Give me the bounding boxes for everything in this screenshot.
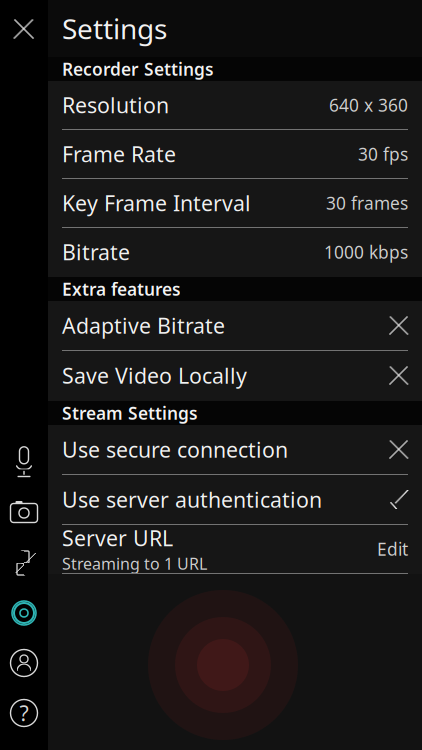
button[interactable]: Use server authentication — [48, 475, 422, 525]
staticText: Streaming to 1 URL — [62, 553, 207, 574]
button[interactable]: Microphone — [0, 436, 48, 488]
staticText: Use secure connection — [62, 435, 288, 464]
button[interactable]: Use secure connection — [48, 425, 422, 475]
button[interactable]: Adaptive Bitrate — [48, 301, 422, 351]
button[interactable]: Switch camera — [0, 488, 48, 538]
staticText: Recorder Settings — [62, 57, 214, 80]
staticText: Bitrate — [62, 238, 130, 266]
staticText: Save Video Locally — [62, 361, 247, 390]
button[interactable]: Frame Rate — [48, 130, 422, 179]
staticText: Key Frame Interval — [62, 189, 251, 217]
staticText: Server URL — [62, 524, 173, 552]
button[interactable]: Settings — [0, 588, 48, 638]
button[interactable]: Help — [0, 688, 48, 738]
staticText: Edit — [377, 537, 408, 560]
button[interactable]: Save Video Locally — [48, 351, 422, 401]
staticText: 30 fps — [358, 142, 408, 165]
staticText: Settings — [62, 10, 167, 47]
staticText: 640 x 360 — [329, 93, 408, 116]
button[interactable]: Resolution — [48, 81, 422, 130]
button[interactable]: Account — [0, 638, 48, 688]
staticText: Stream Settings — [62, 401, 198, 424]
button[interactable]: Bitrate — [48, 228, 422, 277]
staticText: ? — [19, 699, 28, 727]
button[interactable]: Key Frame Interval — [48, 179, 422, 228]
staticText: Use server authentication — [62, 485, 322, 514]
button[interactable]: Flash off — [0, 538, 48, 588]
button[interactable]: Server URL — [48, 525, 422, 574]
staticText: 30 frames — [326, 191, 408, 214]
staticText: Adaptive Bitrate — [62, 311, 225, 340]
button[interactable]: Close — [0, 0, 48, 58]
staticText: 1000 kbps — [324, 240, 408, 263]
staticText: Resolution — [62, 91, 169, 119]
staticText: Frame Rate — [62, 140, 176, 168]
staticText: Extra features — [62, 277, 181, 300]
